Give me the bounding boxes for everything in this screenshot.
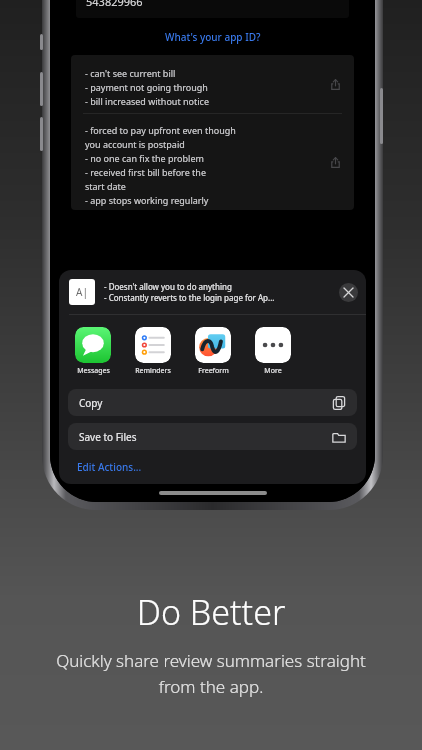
button[interactable]: Edit Actions... [59, 458, 142, 484]
button[interactable]: Share [322, 149, 348, 175]
button[interactable]: Save to Files [68, 423, 357, 450]
button[interactable]: - forced to pay upfront even though you … [71, 114, 354, 210]
staticText: - forced to pay upfront even though you … [85, 124, 236, 207]
button[interactable]: Messages [73, 327, 113, 376]
button[interactable]: Close [339, 283, 358, 302]
button[interactable]: Share [322, 71, 348, 97]
staticText: 543829966 [86, 0, 143, 9]
staticText: Reminders [135, 366, 171, 376]
button[interactable]: Reminders [133, 327, 173, 376]
button[interactable]: A| [59, 270, 366, 314]
button[interactable]: What's your app ID? [165, 30, 261, 44]
staticText: A| [76, 285, 88, 299]
staticText: Edit Actions... [77, 460, 142, 474]
staticText: Messages [77, 366, 110, 376]
button[interactable]: 543829966 [76, 0, 349, 18]
staticText: What's your app ID? [165, 30, 261, 44]
staticText: More [264, 366, 282, 376]
button[interactable]: Freeform [193, 327, 233, 376]
button[interactable]: - can't see current bill - payment not g… [71, 55, 354, 113]
staticText: - can't see current bill - payment not g… [85, 67, 209, 108]
staticText: - Doesn't allow you to do anything - Con… [104, 281, 275, 304]
button[interactable]: More [253, 327, 293, 376]
staticText: Freeform [198, 366, 229, 376]
staticText: Do Better [0, 589, 422, 635]
staticText: Quickly share review summaries straight … [18, 649, 404, 698]
staticText: Copy [79, 396, 103, 410]
staticText: Save to Files [79, 430, 137, 444]
button[interactable]: Copy [68, 389, 357, 416]
